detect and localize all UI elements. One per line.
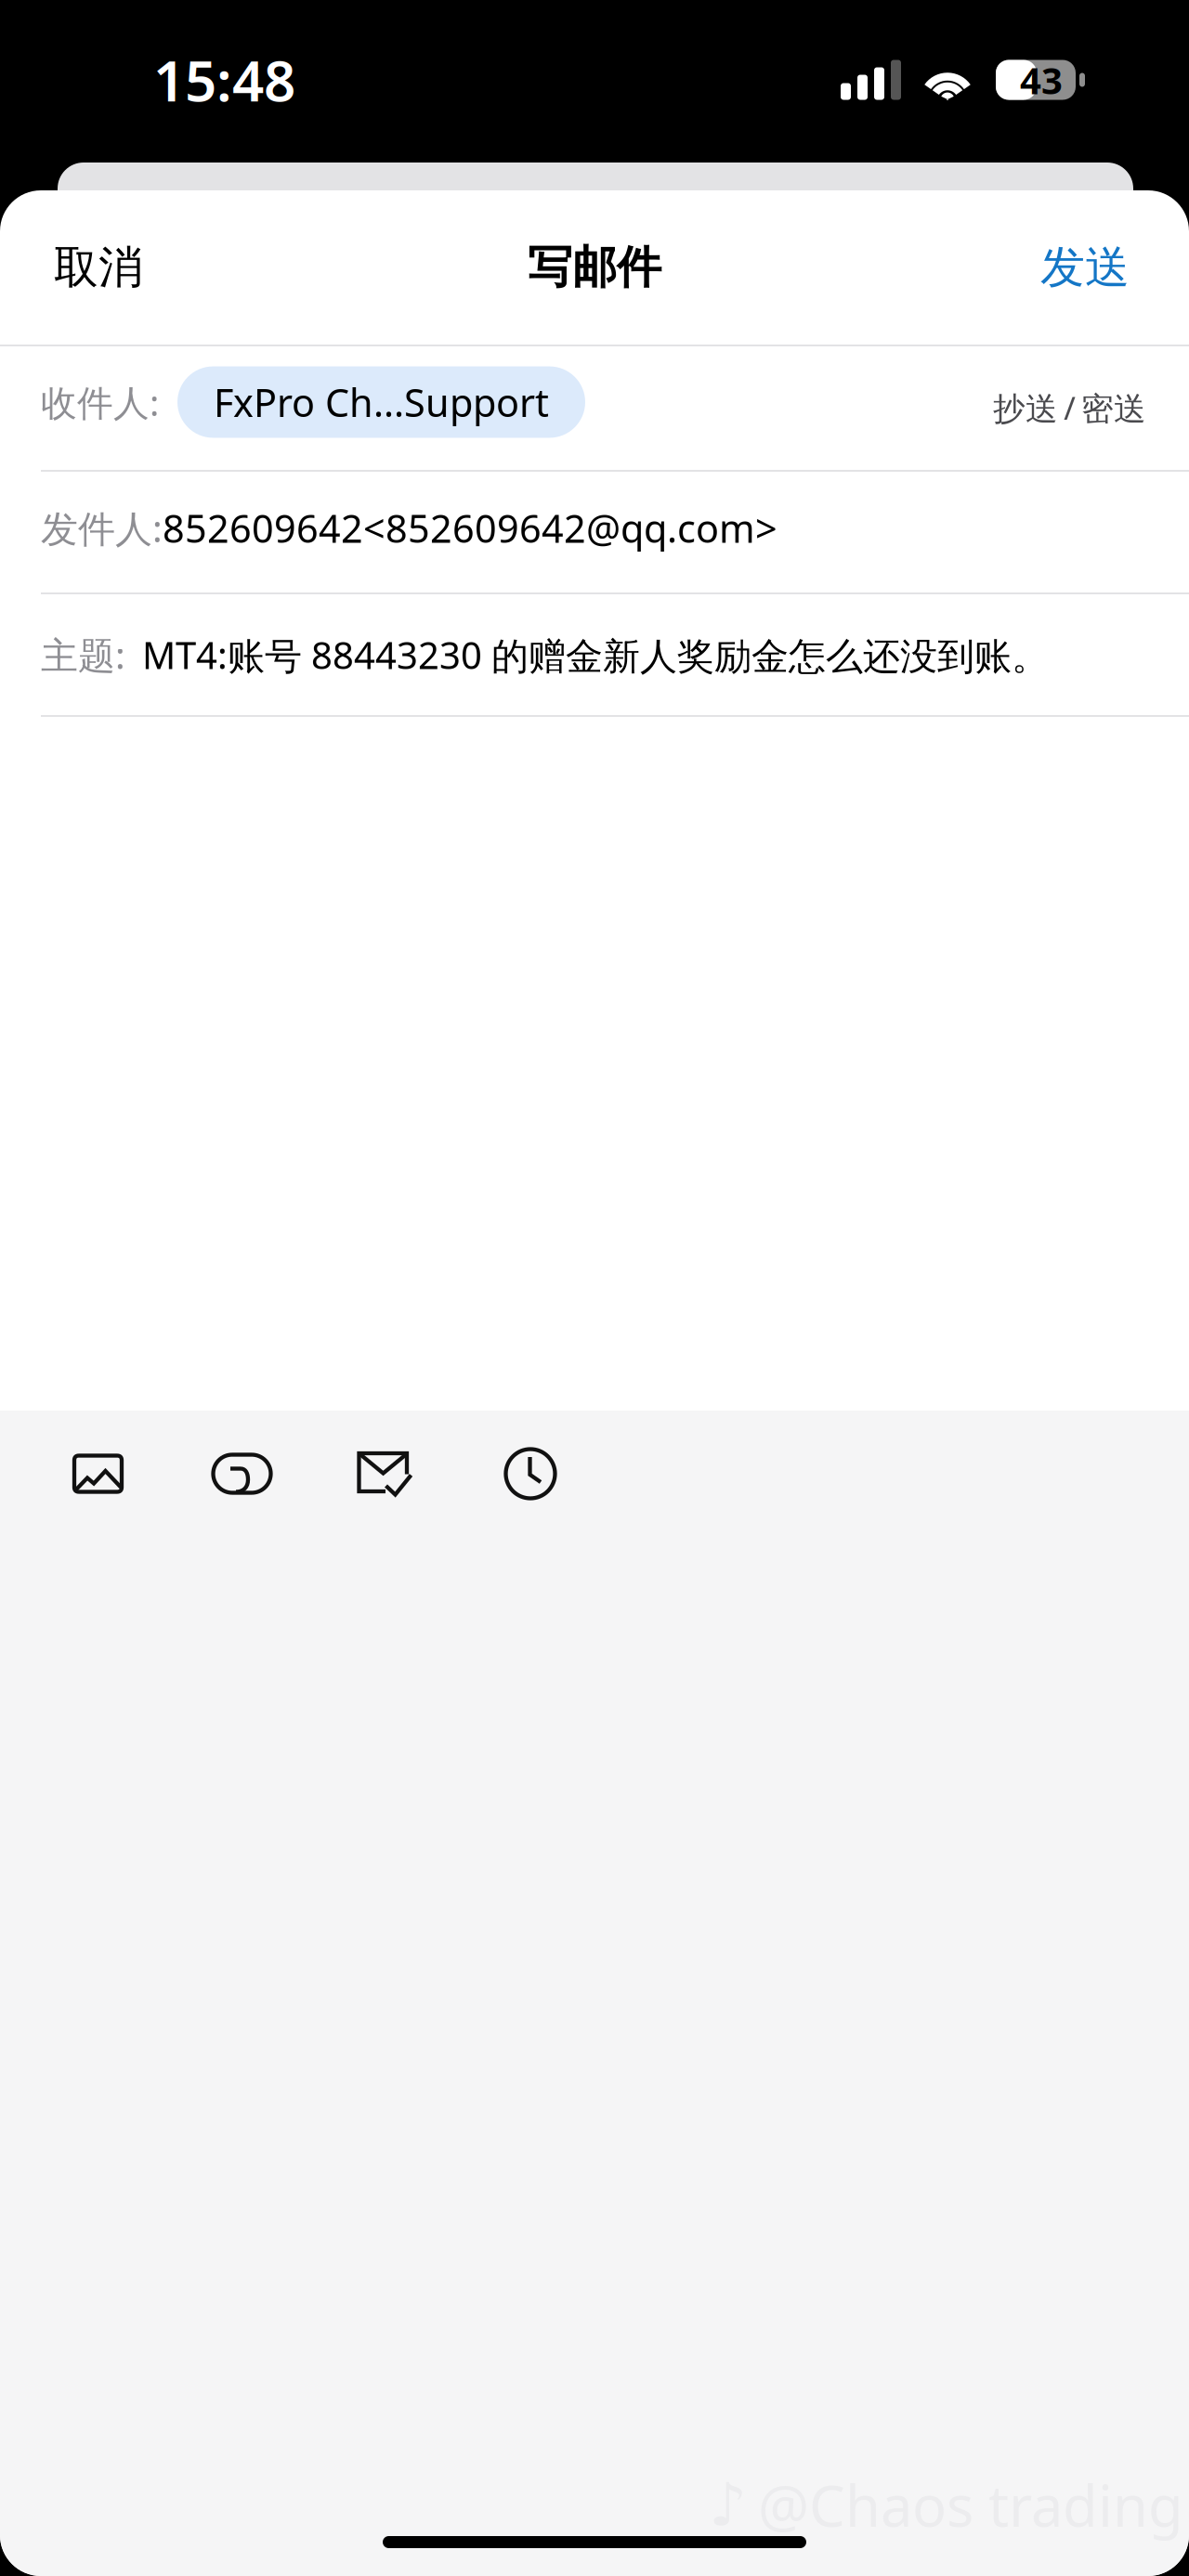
button[interactable]: 取消: [0, 216, 175, 319]
staticText: FxPro Ch...Support: [214, 377, 549, 428]
staticText: 写邮件: [528, 240, 661, 295]
staticText: 发送: [1040, 240, 1130, 295]
button[interactable]: 发送: [1009, 216, 1189, 319]
button[interactable]: 抄送 / 密送: [978, 370, 1146, 435]
staticText: 15:48: [153, 43, 295, 117]
staticText: ♪: [709, 2471, 747, 2538]
staticText: 取消: [54, 240, 143, 295]
button[interactable]: Request read receipt: [357, 1451, 413, 1496]
staticText: MT4:账号 88443230 的赠金新人奖励金怎么还没到账。: [142, 630, 1049, 679]
staticText: 发件人:: [41, 503, 163, 553]
staticText: 抄送 / 密送: [993, 386, 1146, 429]
staticText: 主题:: [41, 630, 125, 679]
button[interactable]: Schedule send: [503, 1447, 557, 1501]
staticText: 852609642<852609642@qq.com>: [163, 502, 777, 553]
button[interactable]: Insert photo: [72, 1453, 124, 1495]
staticText: 收件人:: [41, 378, 159, 426]
staticText: 43: [1020, 55, 1063, 104]
staticText: @Chaos trading: [758, 2467, 1183, 2543]
button[interactable]: Insert signature: [210, 1452, 274, 1496]
